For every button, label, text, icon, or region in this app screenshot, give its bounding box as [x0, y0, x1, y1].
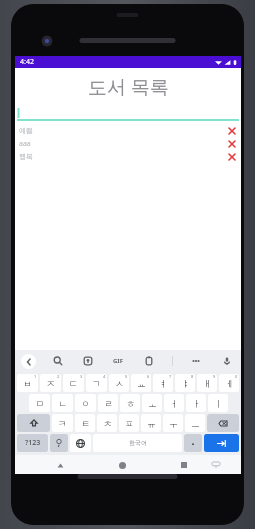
button[interactable]: GIF — [110, 353, 126, 369]
staticText: ㅇ — [81, 398, 90, 409]
button[interactable]: ㅏ — [186, 394, 206, 412]
staticText: ㅣ — [214, 398, 223, 409]
staticText: ㄴ — [58, 398, 67, 409]
button[interactable]: Delete 행복 — [226, 151, 237, 162]
staticText: 1 — [34, 374, 37, 379]
staticText: 3 — [80, 374, 83, 379]
staticText: ㅏ — [192, 398, 201, 409]
staticText: ㅌ — [81, 418, 90, 429]
staticText: 8 — [191, 374, 194, 379]
button[interactable]: ㄹ — [98, 394, 118, 412]
button[interactable]: ㅗ — [142, 394, 162, 412]
button[interactable]: ㅜ — [163, 414, 183, 432]
button[interactable]: Home — [113, 456, 131, 474]
staticText: 6 — [147, 374, 150, 379]
button[interactable]: Search — [50, 353, 66, 369]
button[interactable]: ㅡ — [185, 414, 205, 432]
button[interactable]: More options — [188, 353, 204, 369]
staticText: ㄱ — [92, 378, 101, 389]
staticText: 7 — [169, 374, 172, 379]
staticText: ㅈ — [46, 378, 55, 389]
staticText: 9 — [213, 374, 216, 379]
button[interactable]: ㅊ — [97, 414, 117, 432]
button[interactable]: Delete 예쁨 — [226, 125, 237, 136]
button[interactable]: ㅈ — [40, 374, 61, 392]
button[interactable]: ㅓ — [164, 394, 184, 412]
staticText: ㅁ — [35, 398, 44, 409]
button[interactable]: ㅌ — [75, 414, 95, 432]
button[interactable]: Change language — [70, 434, 91, 452]
staticText: ㅅ — [115, 378, 124, 389]
staticText: 2 — [57, 374, 60, 379]
staticText: ?123 — [25, 438, 41, 448]
staticText: 한국어 — [129, 439, 147, 447]
button[interactable]: Back — [21, 354, 36, 369]
button[interactable]: ㄷ — [63, 374, 84, 392]
button[interactable]: Period — [184, 434, 202, 452]
button[interactable]: ㄴ — [52, 394, 73, 412]
staticText: ㅐ — [203, 378, 212, 389]
button[interactable]: Clipboard — [141, 353, 157, 369]
staticText: ㅗ — [148, 398, 157, 409]
button[interactable]: ㅔ — [219, 374, 239, 392]
button[interactable]: Recent apps — [175, 456, 193, 474]
button[interactable]: ㅍ — [119, 414, 139, 432]
staticText: 행복 — [19, 152, 33, 161]
staticText: ㄹ — [104, 398, 113, 409]
staticText: 0 — [235, 374, 238, 379]
button[interactable]: Shift — [17, 414, 50, 432]
staticText: ㅠ — [147, 418, 156, 429]
staticText: 도서 목록 — [88, 74, 169, 100]
button[interactable]: 행복 — [15, 150, 241, 163]
button[interactable]: ㅣ — [208, 394, 228, 412]
button[interactable]: ㅠ — [141, 414, 161, 432]
staticText: ㅎ — [126, 398, 135, 409]
staticText: ㅓ — [170, 398, 179, 409]
button[interactable]: ㅁ — [29, 394, 50, 412]
button[interactable]: Voice input — [219, 353, 235, 369]
button[interactable]: Enter — [204, 434, 239, 452]
button[interactable]: Stickers — [80, 353, 96, 369]
staticText: aaa — [19, 139, 31, 149]
button[interactable]: ㅋ — [52, 414, 73, 432]
button[interactable]: aaa — [15, 137, 241, 150]
button[interactable]: 예쁨 — [15, 124, 241, 137]
button[interactable]: ?123 — [17, 434, 48, 452]
button[interactable]: 한국어 — [93, 434, 182, 452]
staticText: ㅛ — [137, 378, 146, 389]
staticText: ㅕ — [159, 378, 168, 389]
staticText: ㅑ — [181, 378, 190, 389]
staticText: ㅋ — [58, 418, 67, 429]
button[interactable]: ㅅ — [109, 374, 129, 392]
staticText: ㅊ — [103, 418, 112, 429]
staticText: ㅜ — [169, 418, 178, 429]
staticText: 4:42 — [20, 57, 34, 67]
button[interactable]: ㅛ — [131, 374, 151, 392]
staticText: ㅡ — [191, 418, 200, 429]
button[interactable]: ㅕ — [153, 374, 173, 392]
staticText: ㄷ — [69, 378, 78, 389]
button[interactable]: Hide keyboard — [208, 457, 224, 473]
button[interactable]: ㄱ — [86, 374, 107, 392]
button[interactable]: ㅂ — [17, 374, 38, 392]
staticText: 예쁨 — [19, 126, 33, 135]
button[interactable]: ㅐ — [197, 374, 217, 392]
staticText: ㅔ — [225, 378, 234, 389]
button[interactable]: ㅑ — [175, 374, 195, 392]
staticText: GIF — [113, 357, 123, 365]
staticText: ㅍ — [125, 418, 134, 429]
button[interactable]: ㅎ — [120, 394, 140, 412]
staticText: 4 — [103, 374, 106, 379]
button[interactable]: Delete aaa — [226, 138, 237, 149]
button[interactable]: ㅇ — [75, 394, 96, 412]
button[interactable]: Backspace — [207, 414, 239, 432]
button[interactable] — [17, 106, 239, 121]
button[interactable]: Back — [51, 456, 69, 474]
staticText: 5 — [125, 374, 128, 379]
button[interactable]: Emoji and comma — [50, 434, 68, 452]
staticText: ㅂ — [23, 378, 32, 389]
